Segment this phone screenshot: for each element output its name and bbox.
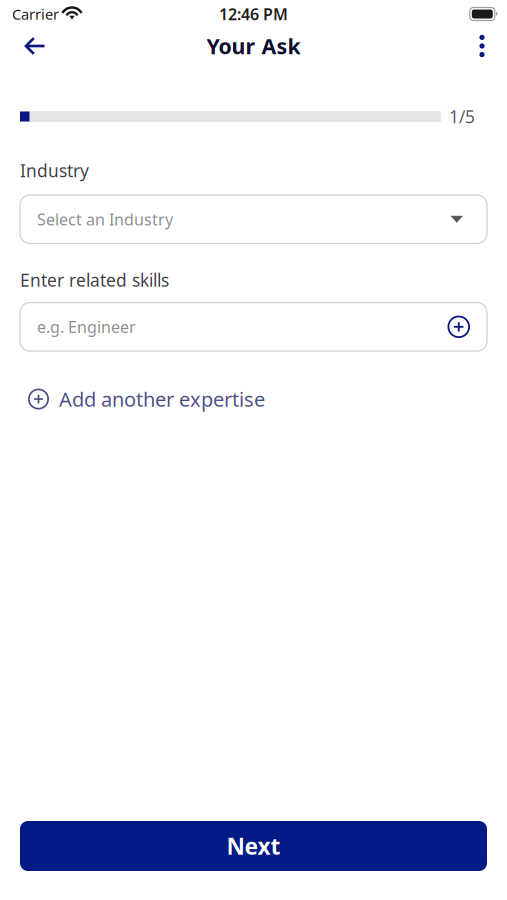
staticText: Select an Industry: [37, 209, 173, 230]
staticText: Add another expertise: [59, 386, 265, 412]
staticText: 12:46 PM: [219, 3, 288, 25]
staticText: Industry: [20, 159, 89, 182]
button[interactable]: Add skill: [447, 316, 470, 338]
staticText: 1/5: [449, 105, 475, 128]
button[interactable]: More options: [462, 27, 502, 65]
button[interactable]: Back: [13, 27, 57, 65]
button[interactable]: e.g. Engineer: [37, 316, 447, 337]
staticText: Your Ask: [206, 32, 300, 60]
button[interactable]: Next: [20, 821, 487, 871]
staticText: Carrier: [12, 4, 59, 24]
button[interactable]: Select an Industry: [20, 195, 487, 243]
button[interactable]: Add another expertise: [20, 385, 265, 413]
staticText: e.g. Engineer: [37, 316, 136, 337]
staticText: Enter related skills: [20, 268, 169, 291]
staticText: Next: [226, 831, 280, 861]
